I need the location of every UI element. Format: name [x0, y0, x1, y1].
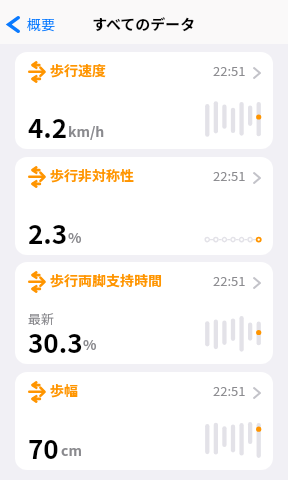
staticText: 概要	[27, 14, 55, 34]
staticText: %	[83, 334, 97, 354]
other: Walking metric	[28, 167, 46, 187]
staticText: 歩行非対称性	[50, 165, 134, 185]
staticText: 70	[28, 429, 59, 467]
staticText: 4.2	[28, 108, 68, 146]
staticText: 最新	[28, 309, 55, 328]
staticText: すべてのデータ	[92, 13, 196, 35]
staticText: 22:51	[213, 381, 246, 400]
button[interactable]: Walking metric	[15, 372, 273, 470]
button[interactable]: Walking metric	[15, 157, 273, 255]
staticText: 22:51	[213, 61, 246, 80]
staticText: cm	[61, 440, 82, 460]
button[interactable]: 概要	[0, 7, 63, 37]
button[interactable]: Walking metric	[15, 262, 273, 364]
other: Walking metric	[28, 382, 46, 402]
staticText: 22:51	[213, 166, 246, 185]
button[interactable]: Walking metric	[15, 52, 273, 149]
staticText: 22:51	[213, 271, 246, 290]
other: Walking metric	[28, 62, 46, 82]
staticText: 歩行速度	[50, 60, 106, 80]
staticText: 歩行両脚支持時間	[50, 270, 162, 290]
staticText: 30.3	[28, 323, 83, 361]
other: Walking metric	[28, 272, 46, 292]
staticText: 2.3	[28, 214, 68, 252]
staticText: %	[68, 227, 82, 247]
staticText: 歩幅	[50, 380, 78, 400]
staticText: km/h	[68, 121, 105, 141]
